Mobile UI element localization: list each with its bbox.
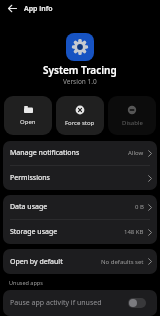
staticText: Open xyxy=(20,118,36,126)
staticText: Storage usage xyxy=(10,227,58,237)
button[interactable] xyxy=(128,298,146,308)
button[interactable]: Pause app activity if unused xyxy=(3,290,157,316)
staticText: Unused apps xyxy=(9,279,43,286)
button[interactable]: Open xyxy=(4,96,52,135)
button[interactable]: Force stop xyxy=(56,96,104,135)
button[interactable]: Data usage xyxy=(3,195,157,219)
staticText: Force stop xyxy=(65,119,95,127)
staticText: No defaults set xyxy=(101,258,144,266)
button[interactable]: Permissions xyxy=(3,166,157,190)
staticText: App info xyxy=(24,4,53,14)
staticText: System Tracing xyxy=(43,63,117,77)
staticText: 0 B xyxy=(135,203,144,211)
button[interactable]: Manage notifications xyxy=(3,141,157,165)
button[interactable]: Open by default xyxy=(3,249,157,274)
staticText: Disable xyxy=(122,119,143,127)
staticText: Version 1.0 xyxy=(63,77,97,86)
staticText: Data usage xyxy=(10,202,48,212)
staticText: Open by default xyxy=(10,257,63,267)
button[interactable] xyxy=(8,4,17,13)
staticText: Permissions xyxy=(10,173,50,183)
staticText: Manage notifications xyxy=(10,148,80,158)
button[interactable]: Disable xyxy=(108,96,156,135)
staticText: 148 KB xyxy=(124,228,144,236)
staticText: Allow xyxy=(128,149,144,157)
button[interactable]: Storage usage xyxy=(3,220,157,244)
staticText: Pause app activity if unused xyxy=(10,298,102,308)
